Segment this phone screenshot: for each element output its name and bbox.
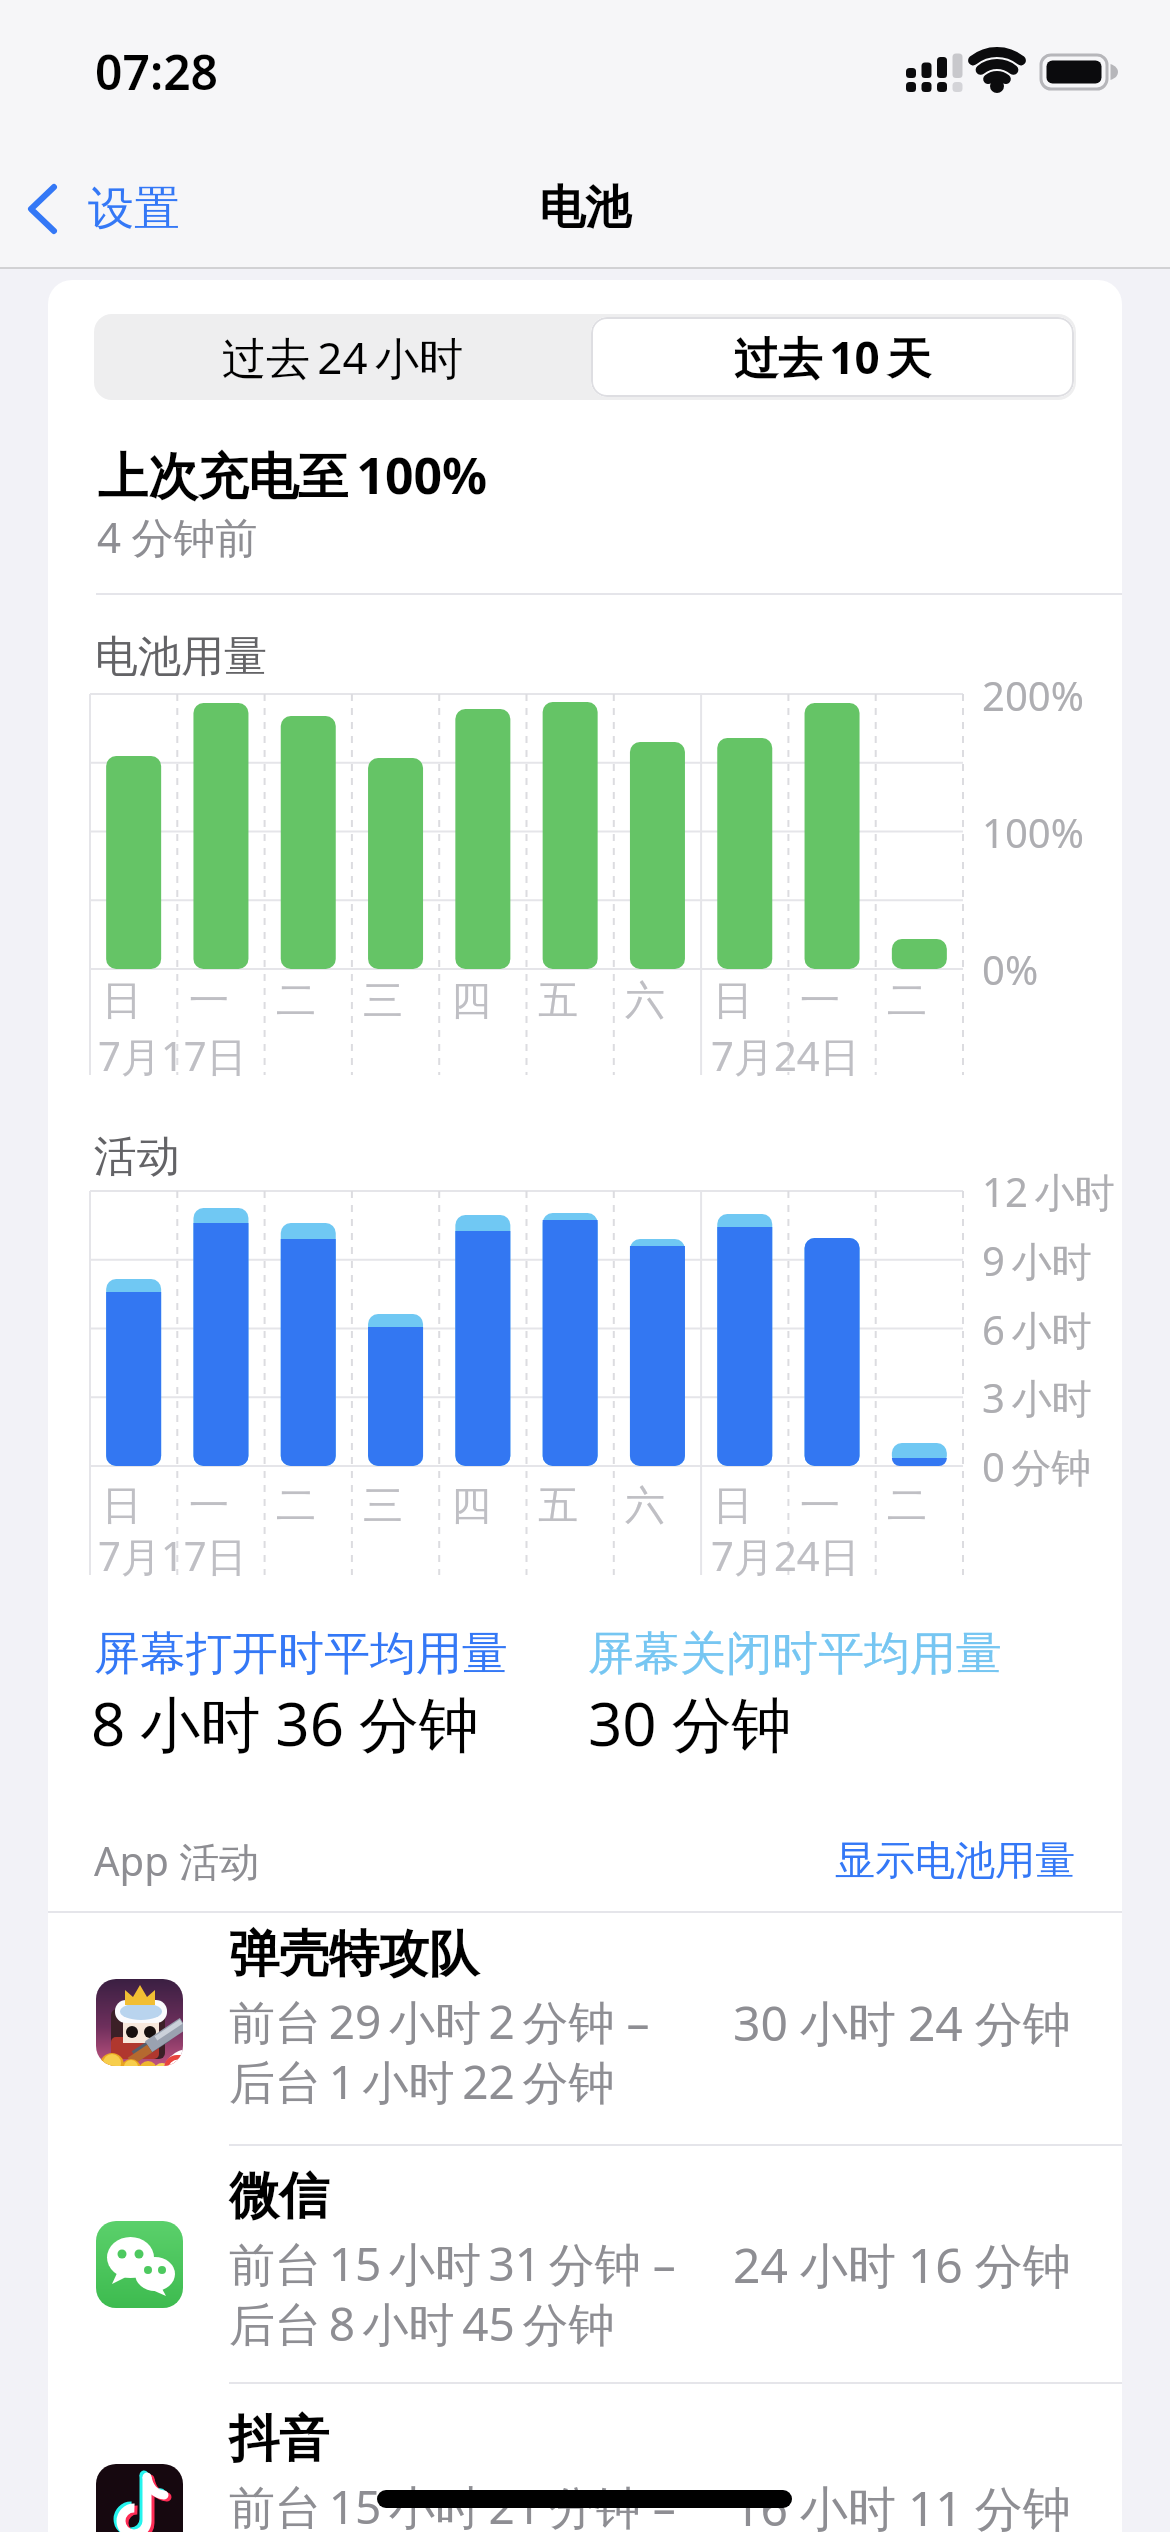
staticText: 二 <box>887 1480 927 1530</box>
button[interactable]: 过去 10 天 <box>591 317 1074 397</box>
staticText: 设置 <box>88 180 180 238</box>
staticText: 二 <box>887 975 927 1025</box>
button[interactable]: 过去 24 小时 <box>94 314 591 400</box>
staticText: 后台 8 小时 45 分钟 <box>229 2292 615 2355</box>
button[interactable] <box>18 178 208 240</box>
staticText: 五 <box>538 1480 578 1530</box>
staticText: 日 <box>102 975 142 1025</box>
staticText: 7月17日 <box>98 1528 247 1583</box>
staticText: 一 <box>189 1480 229 1530</box>
staticText: App 活动 <box>94 1833 260 1888</box>
staticText: 9 小时 <box>982 1233 1092 1288</box>
staticText: 过去 24 小时 <box>222 327 463 387</box>
staticText: 日 <box>102 1480 142 1530</box>
staticText: 微信 <box>229 2165 329 2228</box>
staticText: 24 小时 16 分钟 <box>733 2232 1071 2298</box>
staticText: 六 <box>625 1480 665 1530</box>
staticText: 三 <box>363 975 403 1025</box>
staticText: 6 小时 <box>982 1302 1092 1357</box>
staticText: 三 <box>363 1480 403 1530</box>
staticText: 前台 15 小时 31 分钟 – <box>229 2232 676 2295</box>
staticText: 四 <box>451 975 491 1025</box>
staticText: 30 小时 24 分钟 <box>733 1990 1071 2056</box>
staticText: 日 <box>713 975 753 1025</box>
staticText: 五 <box>538 975 578 1025</box>
staticText: 二 <box>276 1480 316 1530</box>
staticText: 一 <box>189 975 229 1025</box>
staticText: 二 <box>276 975 316 1025</box>
button[interactable] <box>48 1913 1122 2145</box>
button[interactable]: 显示电池用量 <box>835 1835 1075 1885</box>
button[interactable] <box>48 2384 1122 2532</box>
staticText: 过去 10 天 <box>734 327 931 387</box>
staticText: 后台 1 小时 22 分钟 <box>229 2050 615 2113</box>
staticText: 屏幕关闭时平均用量 <box>588 1625 1002 1683</box>
staticText: 100% <box>982 805 1084 859</box>
staticText: 30 分钟 <box>588 1682 792 1764</box>
staticText: 一 <box>800 1480 840 1530</box>
staticText: 3 小时 <box>982 1370 1092 1425</box>
staticText: 上次充电至 100% <box>98 441 488 509</box>
staticText: 7月24日 <box>711 1528 860 1583</box>
staticText: 12 小时 <box>982 1164 1115 1219</box>
staticText: 8 小时 36 分钟 <box>91 1682 479 1764</box>
staticText: 电池用量 <box>95 630 267 684</box>
button[interactable] <box>48 2146 1122 2383</box>
staticText: 200% <box>982 668 1084 722</box>
staticText: 07:28 <box>95 39 219 104</box>
staticText: 7月17日 <box>98 1028 247 1083</box>
staticText: 0% <box>982 942 1039 996</box>
staticText: 屏幕打开时平均用量 <box>94 1625 508 1683</box>
staticText: 一 <box>800 975 840 1025</box>
staticText: 日 <box>713 1480 753 1530</box>
staticText: 弹壳特攻队 <box>229 1923 479 1986</box>
staticText: 7月24日 <box>711 1028 860 1083</box>
staticText: 电池 <box>539 179 631 237</box>
staticText: 活动 <box>94 1130 180 1184</box>
staticText: 抖音 <box>229 2408 329 2471</box>
staticText: 16 小时 11 分钟 <box>733 2475 1071 2532</box>
staticText: 0 分钟 <box>982 1439 1092 1494</box>
staticText: 六 <box>625 975 665 1025</box>
staticText: 前台 15 小时 21 分钟 – <box>229 2475 676 2532</box>
staticText: 四 <box>451 1480 491 1530</box>
staticText: 4 分钟前 <box>97 508 258 565</box>
staticText: 前台 29 小时 2 分钟 – <box>229 1990 650 2053</box>
